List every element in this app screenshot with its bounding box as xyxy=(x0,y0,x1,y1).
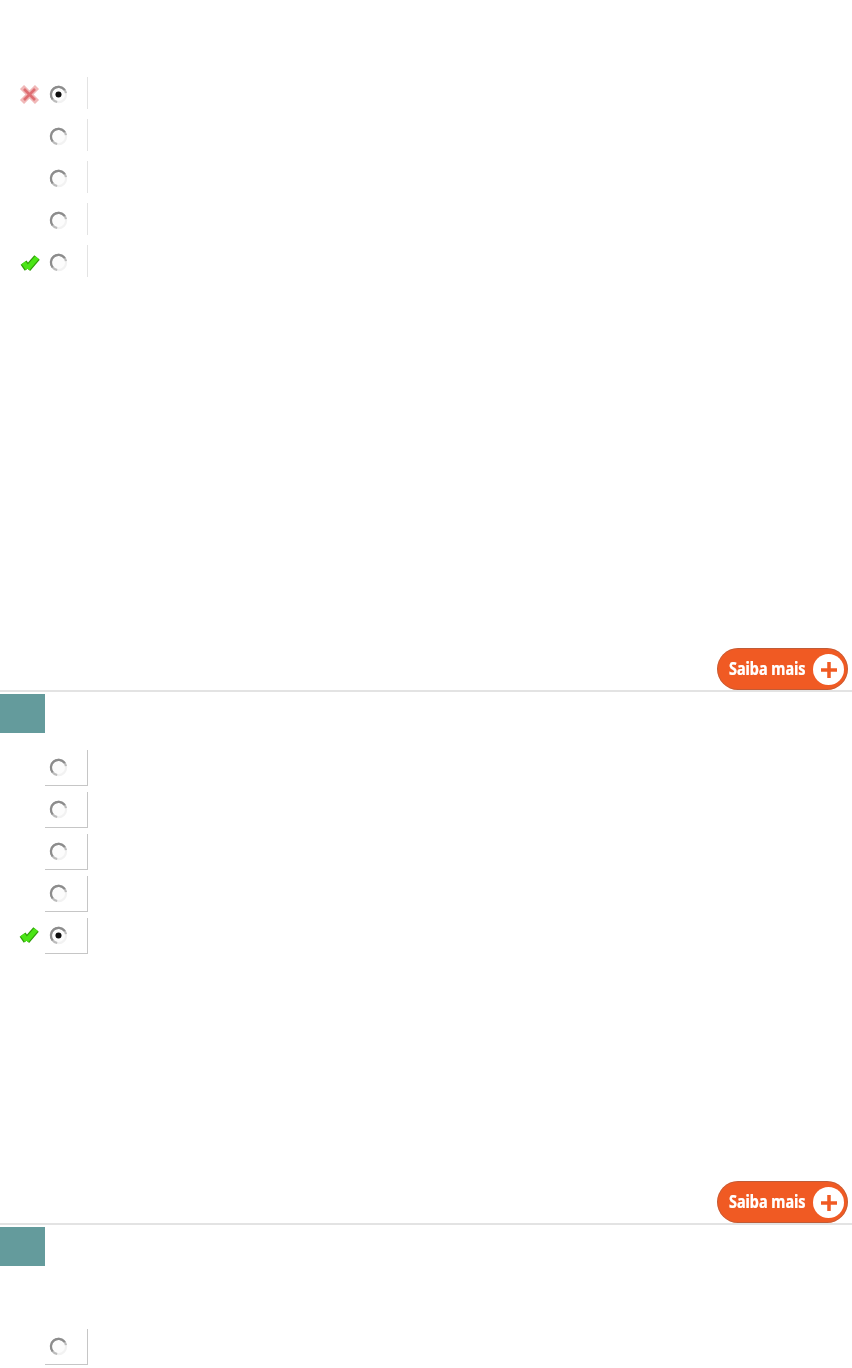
button[interactable]: Option xyxy=(45,876,88,912)
staticText: Saiba mais xyxy=(729,1189,806,1214)
button[interactable]: Option xyxy=(45,792,88,828)
button[interactable]: Option xyxy=(45,750,88,786)
button[interactable]: Option xyxy=(45,161,87,203)
staticText: Saiba mais xyxy=(729,656,806,681)
button[interactable]: Option xyxy=(45,918,88,954)
button[interactable]: Saiba mais xyxy=(717,1181,848,1223)
button[interactable]: Saiba mais xyxy=(717,648,848,690)
button[interactable]: Option xyxy=(45,203,87,245)
button[interactable]: Option xyxy=(45,1329,88,1365)
button[interactable]: Option xyxy=(45,245,87,287)
button[interactable]: Option xyxy=(45,77,87,119)
button[interactable]: Option xyxy=(45,834,88,870)
button[interactable]: Option xyxy=(45,119,87,161)
